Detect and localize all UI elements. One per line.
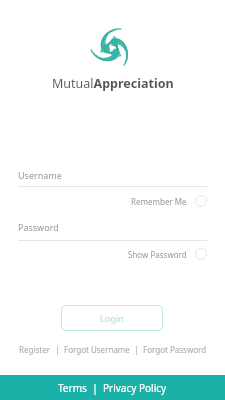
button[interactable]: Privacy Policy [103,381,167,395]
staticText: Remember Me [131,196,187,207]
staticText: MutualAppreciation [52,75,174,92]
staticText: | [130,344,143,355]
button[interactable]: Remember Me [18,195,207,207]
staticText: | [51,344,64,355]
button[interactable]: Forgot Password [143,344,207,355]
button[interactable]: Show Password [18,248,207,260]
staticText: Show Password [128,249,187,260]
staticText: Username [18,169,62,181]
button[interactable]: Forgot Username [64,344,130,355]
button[interactable]: Login [61,305,163,331]
staticText: Password [18,221,59,233]
button[interactable]: Register [19,344,51,355]
staticText: | [87,381,103,395]
staticText: Login [100,312,124,324]
button[interactable]: Terms [58,381,87,395]
